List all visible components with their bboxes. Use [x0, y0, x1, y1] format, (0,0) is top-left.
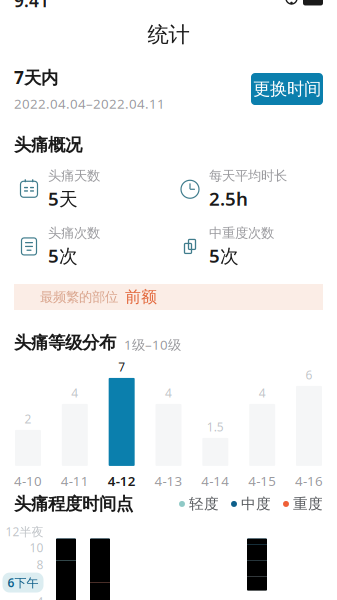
staticText: 每天平均时长	[209, 168, 287, 184]
staticText: 1级–10级	[124, 336, 181, 353]
staticText: 6	[305, 367, 312, 383]
staticText: 4	[36, 594, 43, 600]
staticText: 8	[36, 557, 43, 572]
staticText: 中重度次数	[209, 225, 274, 241]
staticText: 2.5h	[209, 186, 248, 211]
staticText: 4	[165, 385, 172, 401]
staticText: 最频繁的部位	[40, 289, 118, 305]
staticText: 5次	[48, 243, 78, 268]
staticText: 头痛天数	[48, 168, 100, 184]
staticText: 4	[71, 385, 78, 401]
staticText: 10	[29, 540, 43, 555]
staticText: 4-12	[108, 472, 136, 490]
staticText: 5天	[48, 186, 78, 211]
staticText: 7	[118, 359, 125, 375]
staticText: 头痛等级分布	[14, 332, 116, 353]
staticText: 9:41	[14, 0, 49, 12]
staticText: 重度	[293, 495, 323, 513]
staticText: 前额	[125, 287, 157, 307]
staticText: 头痛次数	[48, 225, 100, 241]
staticText: 4-10	[14, 472, 42, 490]
staticText: 2022.04.04–2022.04.11	[14, 95, 165, 112]
staticText: 4-14	[201, 472, 229, 490]
staticText: 4-11	[61, 472, 89, 490]
staticText: 4-13	[154, 472, 182, 490]
button[interactable]: 更换时间	[251, 73, 323, 105]
staticText: 4-15	[248, 472, 276, 490]
staticText: 1.5	[207, 419, 224, 435]
staticText: 中度	[241, 495, 271, 513]
staticText: 头痛概况	[14, 134, 82, 156]
staticText: 更换时间	[253, 78, 321, 100]
staticText: 2	[24, 411, 31, 427]
staticText: 统计	[147, 21, 189, 48]
staticText: 6下午	[7, 575, 38, 590]
staticText: 5次	[209, 243, 239, 268]
staticText: 轻度	[189, 495, 219, 513]
staticText: 12半夜	[5, 524, 43, 539]
staticText: 4	[259, 385, 266, 401]
staticText: 7天内	[14, 66, 58, 89]
staticText: 4-16	[295, 472, 323, 490]
staticText: 头痛程度时间点	[14, 493, 133, 515]
